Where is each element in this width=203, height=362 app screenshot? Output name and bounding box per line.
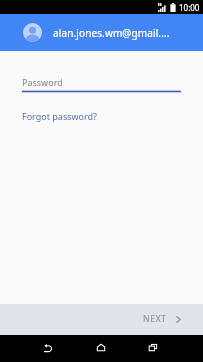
staticText: 10:00 (179, 2, 200, 13)
button[interactable]: Password (22, 75, 181, 89)
staticText: Forgot password? (22, 110, 98, 122)
staticText: NEXT (143, 313, 167, 325)
button[interactable]: NEXT (143, 313, 181, 325)
button[interactable]: Recents (139, 334, 166, 361)
staticText: Password (22, 76, 63, 88)
button[interactable]: Home (87, 334, 114, 361)
staticText: alan.jones.wm@gmail.... (53, 26, 170, 40)
button[interactable]: Forgot password? (22, 110, 98, 122)
button[interactable]: alan.jones.wm@gmail.... (23, 14, 193, 51)
button[interactable]: Back (34, 334, 61, 361)
